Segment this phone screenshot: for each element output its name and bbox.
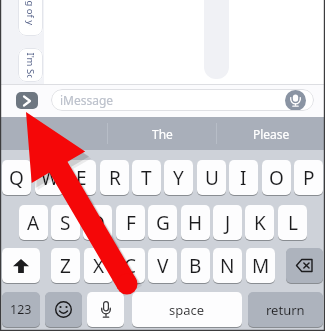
staticText: O — [269, 165, 284, 191]
staticText: V — [157, 253, 169, 279]
button[interactable]: V — [148, 248, 177, 283]
button[interactable]: Q — [2, 160, 31, 195]
staticText: 123 — [10, 301, 32, 318]
button[interactable]: return — [248, 292, 323, 327]
staticText: U — [205, 165, 219, 191]
staticText: F — [126, 210, 136, 236]
button[interactable]: D — [83, 205, 112, 240]
staticText: I'm Sor — [23, 52, 36, 77]
button[interactable]: S — [51, 205, 80, 240]
button[interactable]: J — [213, 205, 242, 240]
button[interactable]: O — [262, 160, 291, 195]
button[interactable]: H — [181, 205, 210, 240]
staticText: E — [76, 165, 87, 191]
button[interactable]: Y — [164, 160, 193, 195]
button[interactable]: R — [100, 160, 129, 195]
staticText: Y — [173, 165, 184, 191]
button[interactable]: U — [197, 160, 226, 195]
button[interactable]: The — [108, 117, 216, 150]
button[interactable]: A — [19, 205, 48, 240]
staticText: L — [288, 210, 298, 236]
button[interactable]: X — [84, 248, 113, 283]
staticText: G — [156, 210, 170, 236]
button[interactable]: M — [246, 248, 275, 283]
staticText: B — [189, 253, 202, 279]
staticText: M — [252, 253, 270, 279]
staticText: Z — [60, 253, 71, 279]
staticText: P — [303, 165, 315, 191]
button[interactable] — [285, 90, 306, 111]
button[interactable]: I — [229, 160, 258, 195]
staticText: The — [152, 126, 173, 142]
button[interactable] — [45, 292, 82, 327]
button[interactable]: space — [132, 292, 242, 327]
staticText: D — [91, 210, 105, 236]
button[interactable]: E — [67, 160, 96, 195]
button[interactable] — [16, 92, 38, 109]
staticText: K — [254, 210, 266, 236]
staticText: iMessage — [60, 92, 114, 108]
button[interactable]: C — [116, 248, 145, 283]
staticText: S — [60, 210, 71, 236]
button[interactable]: iMessage — [51, 89, 314, 111]
staticText: space — [169, 301, 205, 319]
button[interactable]: B — [181, 248, 210, 283]
button[interactable]: F — [116, 205, 145, 240]
staticText: W — [41, 165, 59, 191]
staticText: Please — [253, 126, 290, 142]
staticText: J — [225, 210, 231, 236]
staticText: A — [27, 210, 40, 236]
button[interactable] — [87, 292, 124, 327]
staticText: X — [93, 253, 105, 279]
button[interactable]: L — [278, 205, 307, 240]
staticText: I — [240, 165, 247, 191]
button[interactable]: K — [245, 205, 274, 240]
button[interactable]: Z — [51, 248, 80, 283]
button[interactable]: T — [132, 160, 161, 195]
button[interactable]: G — [148, 205, 177, 240]
button[interactable]: W — [35, 160, 64, 195]
staticText: g of you — [23, 0, 36, 25]
button[interactable]: Please — [217, 117, 325, 150]
staticText: Q — [9, 165, 24, 191]
button[interactable]: P — [294, 160, 323, 195]
staticText: H — [188, 210, 203, 236]
staticText: N — [220, 253, 235, 279]
button[interactable] — [0, 117, 107, 150]
button[interactable] — [286, 248, 323, 283]
staticText: T — [141, 165, 152, 191]
staticText: R — [109, 165, 121, 191]
button[interactable] — [2, 248, 40, 283]
staticText: C — [124, 253, 137, 279]
button[interactable]: N — [213, 248, 242, 283]
button[interactable]: 123 — [2, 292, 40, 327]
staticText: return — [266, 301, 305, 319]
